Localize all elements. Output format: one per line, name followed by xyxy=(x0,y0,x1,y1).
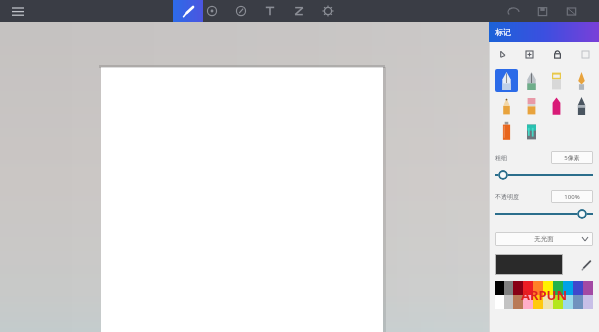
button[interactable]: Color xyxy=(563,295,573,309)
button[interactable]: Brush tool xyxy=(570,94,593,117)
button[interactable]: Brush xyxy=(173,0,203,22)
button[interactable]: Brush tool xyxy=(495,119,518,142)
staticText: 无光面 xyxy=(534,235,554,243)
button[interactable]: Eraser xyxy=(198,0,226,22)
button[interactable]: Color xyxy=(533,295,543,309)
button[interactable]: Color xyxy=(513,295,523,309)
staticText: ARPUN xyxy=(521,286,567,304)
button[interactable]: Brush tool xyxy=(495,69,518,92)
staticText: 标记 xyxy=(495,27,511,37)
button[interactable]: Color xyxy=(533,281,543,295)
button[interactable]: Color xyxy=(523,295,533,309)
button[interactable]: Undo xyxy=(500,0,526,22)
button[interactable]: Finish xyxy=(495,232,593,246)
button[interactable]: Current color xyxy=(495,254,563,275)
button[interactable]: Save xyxy=(529,0,555,22)
button[interactable]: Color xyxy=(553,281,563,295)
button[interactable]: Brush tool xyxy=(520,119,543,142)
button[interactable]: Select xyxy=(489,42,516,66)
button[interactable]: Color xyxy=(553,295,563,309)
button[interactable]: Color xyxy=(543,295,553,309)
staticText: 5像素 xyxy=(564,154,580,162)
button[interactable]: More xyxy=(571,42,599,66)
button[interactable]: Brush tool xyxy=(495,94,518,117)
button[interactable]: Color xyxy=(543,281,553,295)
staticText: 粗细 xyxy=(495,154,507,162)
button[interactable]: Text xyxy=(256,0,284,22)
button[interactable]: Brush tool xyxy=(570,69,593,92)
button[interactable]: Eyedropper xyxy=(579,258,593,272)
button[interactable]: Brush tool xyxy=(545,94,568,117)
button[interactable]: Color xyxy=(523,281,533,295)
button[interactable]: 100% xyxy=(551,190,593,203)
button[interactable]: Brush tool xyxy=(520,94,543,117)
button[interactable]: Settings xyxy=(314,0,342,22)
button[interactable]: Menu xyxy=(0,0,36,22)
button[interactable]: Effects xyxy=(285,0,313,22)
button[interactable]: 5像素 xyxy=(551,151,593,164)
button[interactable]: Add layer xyxy=(516,42,543,66)
staticText: 不透明度 xyxy=(495,193,519,201)
button[interactable]: Brush tool xyxy=(545,69,568,92)
button[interactable]: 粗细 xyxy=(495,169,593,181)
button[interactable]: Fill xyxy=(227,0,255,22)
staticText: 100% xyxy=(564,193,580,201)
button[interactable]: Lock xyxy=(543,42,571,66)
button[interactable]: 不透明度 xyxy=(495,208,593,220)
button[interactable]: Color xyxy=(563,281,573,295)
button[interactable]: Brush tool xyxy=(520,69,543,92)
button[interactable]: Share xyxy=(558,0,584,22)
